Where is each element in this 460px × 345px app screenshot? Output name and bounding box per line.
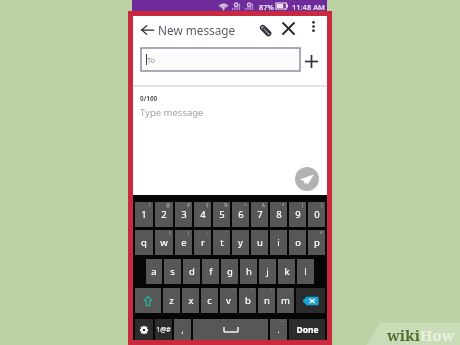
staticText: Type message xyxy=(140,106,204,119)
button[interactable]: # xyxy=(175,202,192,227)
button[interactable]: Back xyxy=(137,19,158,40)
staticText: u xyxy=(257,236,263,249)
button[interactable]: h xyxy=(240,259,257,284)
staticText: 9 xyxy=(295,208,301,221)
button[interactable]: ` xyxy=(213,230,230,255)
staticText: f xyxy=(209,265,213,278)
staticText: ' xyxy=(271,288,273,294)
button[interactable]: Attach xyxy=(255,20,275,40)
button[interactable]: ' xyxy=(239,288,256,313)
staticText: & xyxy=(262,202,266,208)
button[interactable]: l xyxy=(297,259,314,284)
button[interactable]: a xyxy=(146,259,162,284)
staticText: \ xyxy=(169,230,171,236)
staticText: p xyxy=(314,236,320,249)
button[interactable]: o xyxy=(289,230,306,255)
button[interactable]: Backspace xyxy=(296,288,325,313)
button[interactable]: ' xyxy=(277,288,294,313)
button[interactable]: More options xyxy=(305,18,322,35)
button[interactable]: Done xyxy=(289,319,325,340)
button[interactable]: z xyxy=(163,288,180,313)
staticText: 0 xyxy=(314,208,320,221)
staticText: ' xyxy=(233,288,235,294)
button[interactable]: * xyxy=(308,230,325,255)
button[interactable]: ⋯ xyxy=(270,319,287,340)
button[interactable]: Close xyxy=(278,18,298,38)
button[interactable]: \ xyxy=(155,230,173,255)
button[interactable]: q xyxy=(135,230,153,255)
staticText: n xyxy=(264,294,270,307)
staticText: i xyxy=(277,236,280,249)
button[interactable]: $ xyxy=(194,202,211,227)
staticText: y xyxy=(238,236,243,249)
button[interactable]: Shift xyxy=(135,288,161,313)
button[interactable]: x xyxy=(182,288,199,313)
button[interactable]: To xyxy=(141,48,300,71)
button[interactable]: ) xyxy=(308,202,325,227)
staticText: @ xyxy=(166,202,171,208)
staticText: , xyxy=(181,324,184,335)
staticText: ' xyxy=(252,288,254,294)
button[interactable]: ' xyxy=(220,288,237,313)
button[interactable]: ! xyxy=(135,202,153,227)
staticText: q xyxy=(141,236,147,249)
button[interactable]: y xyxy=(232,230,249,255)
staticText: ) xyxy=(321,202,323,208)
staticText: l xyxy=(304,265,307,278)
button[interactable]: | xyxy=(175,230,192,255)
staticText: ! xyxy=(149,202,151,208)
staticText: d xyxy=(189,265,195,278)
button[interactable]: Space xyxy=(193,319,268,340)
staticText: 8 xyxy=(276,208,282,221)
button[interactable]: ' xyxy=(258,288,275,313)
staticText: ~ xyxy=(206,230,209,236)
button[interactable]: ^ xyxy=(232,202,249,227)
button[interactable]: d xyxy=(183,259,200,284)
button[interactable]: i xyxy=(270,230,287,255)
staticText: o xyxy=(295,236,301,249)
button[interactable]: ~ xyxy=(194,230,211,255)
staticText: x xyxy=(188,294,194,307)
staticText: ⋯ xyxy=(280,319,285,324)
staticText: v xyxy=(226,294,231,307)
staticText: Done xyxy=(296,324,319,336)
staticText: # xyxy=(187,202,190,208)
staticText: g xyxy=(227,265,233,278)
button[interactable]: 1@# xyxy=(155,319,172,340)
button[interactable]: j xyxy=(259,259,276,284)
staticText: . xyxy=(277,324,280,335)
button[interactable]: * xyxy=(270,202,287,227)
staticText: * xyxy=(320,230,323,236)
button[interactable]: & xyxy=(251,202,268,227)
staticText: ( xyxy=(302,202,304,208)
staticText: a xyxy=(151,265,157,278)
staticText: e xyxy=(181,236,187,249)
staticText: r xyxy=(201,236,205,249)
button[interactable]: Settings xyxy=(135,319,153,340)
staticText: t xyxy=(220,236,224,249)
staticText: New message xyxy=(158,22,236,38)
staticText: 87% xyxy=(259,2,274,12)
staticText: 11:48 AM xyxy=(292,2,325,12)
button[interactable]: c xyxy=(201,288,218,313)
staticText: 5 xyxy=(219,208,225,221)
button[interactable]: g xyxy=(221,259,238,284)
staticText: c xyxy=(207,294,212,307)
button[interactable]: ( xyxy=(289,202,306,227)
staticText: ` xyxy=(226,230,228,236)
staticText: 4 xyxy=(200,208,206,221)
staticText: | xyxy=(187,230,190,236)
button[interactable]: f xyxy=(202,259,219,284)
button[interactable]: % xyxy=(213,202,230,227)
button[interactable]: Add recipient xyxy=(303,53,319,69)
staticText: ' xyxy=(290,288,292,294)
button[interactable]: , xyxy=(174,319,191,340)
button[interactable]: u xyxy=(251,230,268,255)
staticText: b xyxy=(245,294,251,307)
button[interactable]: @ xyxy=(155,202,173,227)
button[interactable]: Send xyxy=(295,167,319,191)
button[interactable]: k xyxy=(278,259,295,284)
button[interactable]: s xyxy=(164,259,181,284)
staticText: s xyxy=(170,265,175,278)
staticText: % xyxy=(224,202,228,208)
